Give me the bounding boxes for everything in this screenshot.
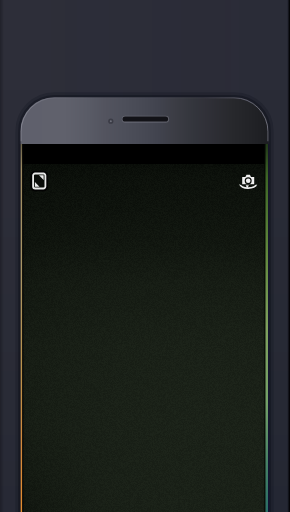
button[interactable]: Switch camera — [232, 164, 266, 198]
button[interactable]: Gallery — [22, 164, 56, 198]
